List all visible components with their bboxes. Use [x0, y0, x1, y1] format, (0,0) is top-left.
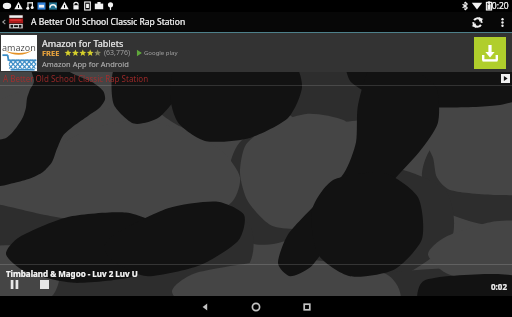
button[interactable]: Refresh — [462, 12, 492, 32]
button[interactable]: Recents — [290, 296, 324, 317]
button[interactable]: Navigate up — [0, 12, 8, 32]
staticText: FREE — [42, 48, 60, 58]
staticText: Amazon for Tablets — [42, 37, 124, 48]
button[interactable]: Pause — [8, 278, 21, 291]
button[interactable]: Home — [239, 296, 273, 317]
staticText: amazon — [2, 41, 36, 53]
button[interactable]: Back — [188, 296, 222, 317]
staticText: Google play — [144, 49, 178, 57]
staticText: 10:20 — [487, 0, 509, 12]
staticText: 0:02 — [491, 281, 507, 292]
staticText: (63,776) — [104, 48, 131, 58]
staticText: A Better Old School Classic Rap Station — [3, 73, 149, 84]
button[interactable]: Install — [474, 37, 506, 69]
staticText: Amazon App for Android — [42, 59, 129, 69]
button[interactable]: Stop — [38, 278, 51, 291]
staticText: Timbaland & Magoo - Luv 2 Luv U — [6, 268, 138, 279]
button[interactable]: Play — [501, 74, 510, 83]
button[interactable]: More options — [492, 12, 512, 32]
staticText: A Better Old School Classic Rap Station — [31, 16, 186, 28]
